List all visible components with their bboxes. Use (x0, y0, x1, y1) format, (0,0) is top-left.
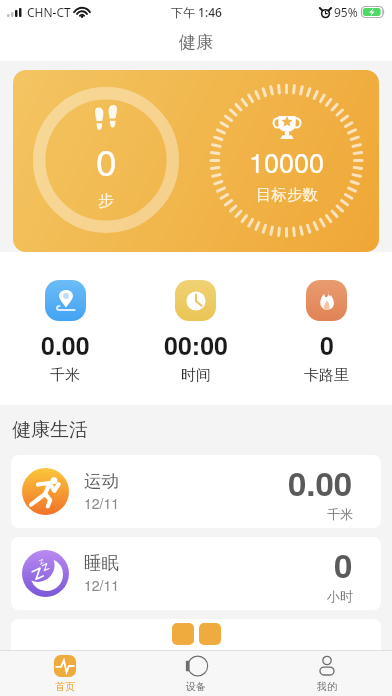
button[interactable]: 0.00 (0, 280, 130, 385)
staticText: 0.00 (288, 459, 353, 506)
button[interactable]: 运动 (11, 455, 381, 528)
staticText: 小时 (327, 588, 353, 604)
staticText: 10000 (249, 142, 325, 181)
staticText: 千米 (327, 506, 353, 522)
staticText: 0 (334, 541, 353, 588)
staticText: 12/11 (84, 575, 120, 595)
staticText: 0 (320, 327, 334, 363)
staticText: 12/11 (84, 493, 120, 513)
staticText: 卡路里 (304, 366, 349, 385)
staticText: 运动 (84, 470, 119, 492)
staticText: 首页 (55, 680, 75, 693)
staticText: 设备 (186, 680, 206, 693)
button[interactable] (11, 619, 381, 650)
staticText: 下午 1:46 (171, 4, 222, 20)
staticText: 步 (98, 191, 114, 211)
staticText: 千米 (50, 366, 80, 385)
staticText: 睡眠 (84, 552, 119, 574)
staticText: 我的 (317, 680, 337, 693)
staticText: 时间 (181, 366, 211, 385)
staticText: 0 (96, 134, 117, 187)
button[interactable]: 00:00 (130, 280, 261, 385)
staticText: CHN-CT (27, 4, 71, 20)
staticText: 目标步数 (256, 185, 318, 205)
staticText: 95% (334, 4, 358, 20)
staticText: 健康 (179, 32, 213, 53)
staticText: 00:00 (164, 327, 228, 363)
button[interactable]: 设备 (130, 651, 261, 696)
button[interactable]: 0 (13, 70, 379, 252)
button[interactable]: 首页 (0, 651, 130, 696)
button[interactable]: 0 (261, 280, 392, 385)
staticText: 0.00 (41, 327, 90, 363)
button[interactable]: 睡眠 (11, 537, 381, 610)
staticText: 健康生活 (12, 418, 88, 442)
button[interactable]: 我的 (261, 651, 392, 696)
